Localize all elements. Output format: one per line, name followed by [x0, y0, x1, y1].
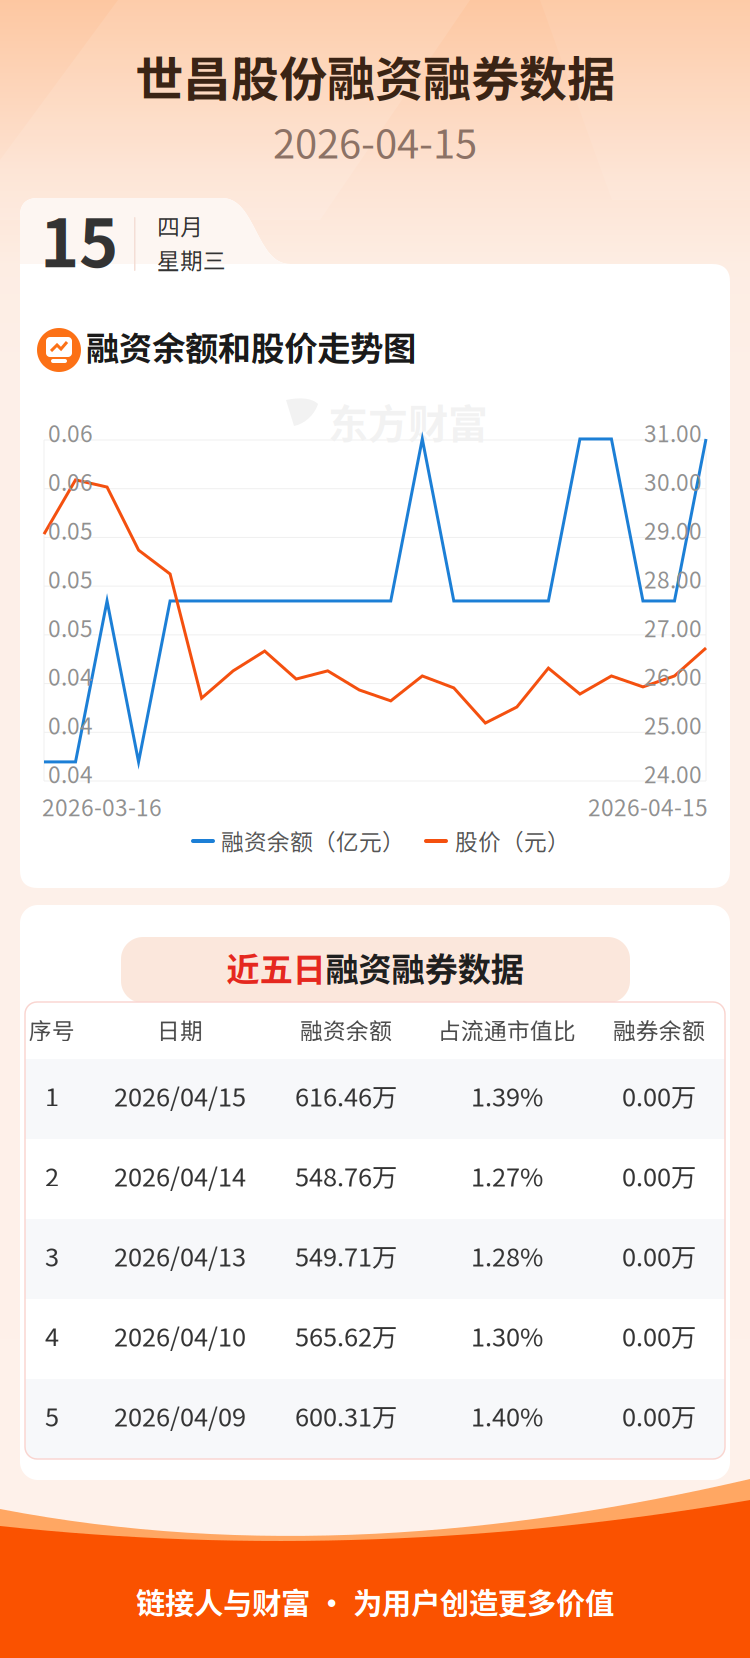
staticText: 565.62万 — [295, 1317, 397, 1354]
staticText: 1.27% — [471, 1157, 543, 1194]
staticText: 0.00万 — [622, 1317, 696, 1354]
staticText: 0.06 — [48, 416, 93, 449]
staticText: 股价（元） — [455, 824, 570, 857]
staticText: 2 — [45, 1157, 59, 1194]
staticText: 世昌股份融资融券数据 — [135, 41, 615, 110]
staticText: 2026/04/15 — [114, 1077, 246, 1114]
staticText: 1.39% — [471, 1077, 543, 1114]
staticText: 融资余额（亿元） — [221, 824, 405, 857]
staticText: 548.76万 — [295, 1157, 397, 1194]
staticText: 融资余额 — [300, 1013, 392, 1046]
staticText: 2026-04-15 — [273, 112, 477, 170]
staticText: 0.05 — [48, 562, 93, 595]
staticText: 序号 — [29, 1013, 75, 1046]
staticText: 30.00 — [644, 465, 702, 497]
staticText: 1.30% — [471, 1317, 543, 1354]
staticText: 占流通市值比 — [438, 1013, 576, 1046]
staticText: 549.71万 — [295, 1237, 397, 1274]
staticText: 15 — [40, 190, 118, 286]
staticText: 链接人与财富 · 为用户创造更多价值 — [136, 1580, 614, 1622]
staticText: 融资余额和股价走势图 — [86, 322, 416, 370]
staticText: 0.04 — [48, 757, 93, 790]
staticText: 东方财富 — [328, 392, 488, 450]
staticText: 25.00 — [644, 708, 702, 741]
staticText: 24.00 — [644, 757, 702, 790]
staticText: 5 — [45, 1397, 59, 1434]
staticText: 2026/04/14 — [114, 1157, 246, 1194]
staticText: 29.00 — [644, 513, 702, 546]
staticText: 0.04 — [48, 660, 93, 692]
staticText: 0.00万 — [622, 1077, 696, 1114]
staticText: 0.05 — [48, 513, 93, 546]
staticText: 2026/04/10 — [114, 1317, 246, 1354]
staticText: 4 — [45, 1317, 59, 1354]
staticText: 1 — [45, 1077, 59, 1114]
staticText: 融资融券数据 — [325, 943, 523, 991]
staticText: 616.46万 — [295, 1077, 397, 1114]
staticText: 3 — [45, 1237, 59, 1274]
staticText: 26.00 — [644, 660, 702, 692]
staticText: 0.04 — [48, 708, 93, 741]
staticText: 日期 — [157, 1013, 203, 1046]
staticText: 600.31万 — [295, 1397, 397, 1434]
staticText: 0.00万 — [622, 1157, 696, 1194]
staticText: 2026/04/13 — [114, 1237, 246, 1274]
staticText: 31.00 — [644, 416, 702, 449]
staticText: 0.00万 — [622, 1397, 696, 1434]
staticText: 0.00万 — [622, 1237, 696, 1274]
staticText: 2026/04/09 — [114, 1397, 246, 1434]
staticText: 27.00 — [644, 611, 702, 644]
staticText: 28.00 — [644, 562, 702, 595]
staticText: 四月 — [157, 209, 203, 242]
staticText: 融券余额 — [613, 1013, 705, 1046]
staticText: 0.05 — [48, 611, 93, 644]
staticText: 2026-03-16 — [42, 790, 162, 823]
staticText: 1.40% — [471, 1397, 543, 1434]
staticText: 2026-04-15 — [588, 790, 708, 823]
staticText: 近五日 — [226, 943, 325, 991]
staticText: 星期三 — [157, 243, 226, 276]
staticText: 1.28% — [471, 1237, 543, 1274]
staticText: 0.06 — [48, 465, 93, 497]
